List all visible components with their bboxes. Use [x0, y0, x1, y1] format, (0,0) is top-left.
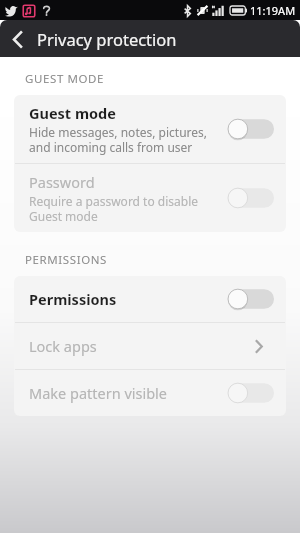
staticText: 11:19AM	[250, 3, 296, 18]
button[interactable]: Permissions	[14, 276, 286, 322]
button[interactable]: Guest mode	[14, 95, 286, 163]
staticText: GUEST MODE	[25, 71, 105, 87]
button[interactable]: Make pattern visible	[14, 370, 286, 416]
button[interactable]: Toggle	[228, 186, 274, 210]
staticText: Make pattern visible	[29, 383, 168, 403]
button[interactable]: Password	[14, 164, 286, 232]
staticText: Privacy protection	[37, 28, 177, 50]
button[interactable]: Toggle	[228, 117, 274, 141]
staticText: Password	[29, 172, 95, 192]
button[interactable]: Lock apps	[14, 323, 286, 369]
button[interactable]: Back	[0, 22, 34, 56]
staticText: Guest mode	[29, 103, 116, 123]
staticText: Lock apps	[29, 336, 97, 356]
staticText: Permissions	[29, 289, 117, 309]
staticText: Require a password to disable Guest mode	[29, 193, 199, 224]
button[interactable]: Toggle	[228, 381, 274, 405]
staticText: PERMISSIONS	[25, 252, 107, 268]
button[interactable]: Toggle	[228, 287, 274, 311]
staticText: Hide messages, notes, pictures, and inco…	[29, 124, 207, 155]
button[interactable]: Open	[244, 334, 274, 358]
